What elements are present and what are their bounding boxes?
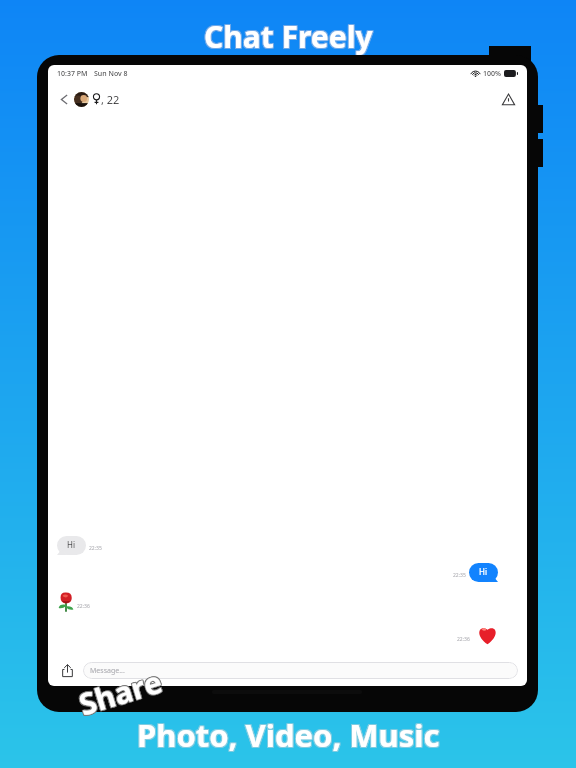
staticText: Photo, Video, Music [136,714,439,756]
staticText: Share [74,661,167,725]
button[interactable]: Back [55,90,120,108]
staticText: Chat Freely [205,15,374,56]
staticText: Share [73,660,166,724]
staticText: Share [74,660,167,725]
button[interactable] [58,592,74,612]
staticText: 22:36 [77,603,90,610]
button[interactable]: Share [57,660,77,680]
staticText: 22:35 [89,545,102,552]
staticText: Photo, Video, Music [138,713,441,755]
other: Back [55,90,73,108]
staticText: Photo, Video, Music [136,713,439,755]
staticText: Hi [479,566,487,577]
button[interactable]: Report [498,89,518,109]
staticText: 22:36 [457,636,470,643]
staticText: Share [75,661,168,725]
staticText: Photo, Video, Music [136,715,439,757]
staticText: , 22 [101,92,120,107]
staticText: 22:35 [453,572,466,579]
staticText: Share [75,660,168,724]
button[interactable]: Message... [83,662,518,679]
staticText: Chat Freely [204,15,373,56]
staticText: Photo, Video, Music [138,714,441,756]
button[interactable]: Hi [57,536,86,555]
staticText: Share [73,662,166,726]
staticText: Hi [67,539,75,550]
staticText: Chat Freely [204,16,373,57]
staticText: Share [74,659,168,723]
staticText: 10:37 PM [57,69,88,79]
staticText: Message... [90,666,125,676]
staticText: Chat Freely [203,16,372,57]
staticText: Share [73,661,166,725]
staticText: Chat Freely [203,15,372,56]
staticText: Chat Freely [203,17,372,58]
staticText: Photo, Video, Music [137,713,440,755]
button[interactable] [477,624,498,645]
staticText: Chat Freely [205,17,374,58]
staticText: 100% [483,69,501,79]
staticText: Photo, Video, Music [137,714,440,756]
staticText: Photo, Video, Music [138,715,441,757]
staticText: Chat Freely [205,16,374,57]
staticText: Share [74,659,167,724]
button[interactable]: Hi [469,563,498,582]
staticText: Sun Nov 8 [94,69,128,79]
staticText: Chat Freely [204,17,373,58]
staticText: Photo, Video, Music [137,715,440,757]
